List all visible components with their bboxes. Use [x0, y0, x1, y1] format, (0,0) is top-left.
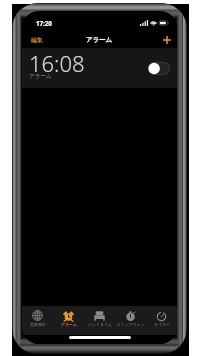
button[interactable]: 世界時計 [22, 306, 53, 335]
button[interactable]: タイマー [146, 306, 177, 335]
button[interactable]: ベッドタイム [84, 306, 115, 335]
button[interactable]: アラーム [53, 306, 84, 335]
staticText: タイマー [154, 322, 170, 327]
staticText: アラーム [61, 322, 77, 327]
staticText: 世界時計 [30, 322, 46, 327]
staticText: 編集 [31, 36, 43, 44]
button[interactable]: Add alarm [157, 32, 177, 48]
button[interactable]: 16:08 [22, 48, 177, 88]
staticText: アラーム [86, 36, 113, 44]
staticText: 16:08 [29, 48, 85, 78]
staticText: ベッドタイム [88, 322, 112, 327]
button[interactable]: 編集 [22, 32, 52, 48]
staticText: ストップウォッチ [115, 322, 146, 327]
button[interactable]: Toggle alarm [148, 62, 170, 75]
staticText: アラーム [29, 73, 52, 80]
staticText: 17:20 [36, 19, 52, 27]
button[interactable]: ストップウォッチ [115, 306, 146, 335]
